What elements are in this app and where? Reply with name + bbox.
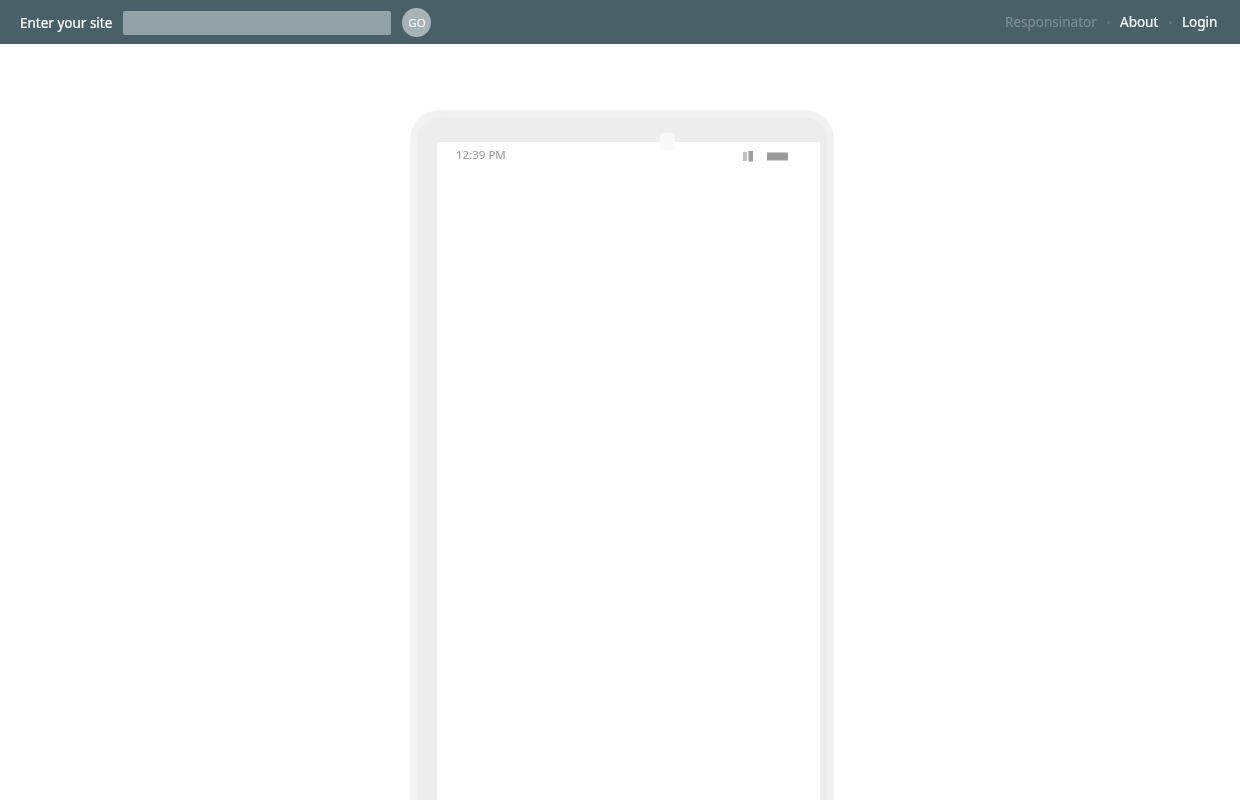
- staticText: 12:39 PM: [456, 147, 506, 163]
- staticText: Enter your site: [20, 14, 113, 32]
- staticText: Login: [1182, 13, 1218, 31]
- button[interactable]: GO: [402, 8, 431, 37]
- button[interactable]: Login: [1180, 7, 1220, 37]
- button[interactable]: About: [1118, 7, 1161, 37]
- button[interactable]: Responsinator: [1003, 7, 1099, 37]
- staticText: Responsinator: [1005, 13, 1097, 31]
- staticText: GO: [408, 15, 426, 31]
- staticText: About: [1120, 13, 1159, 31]
